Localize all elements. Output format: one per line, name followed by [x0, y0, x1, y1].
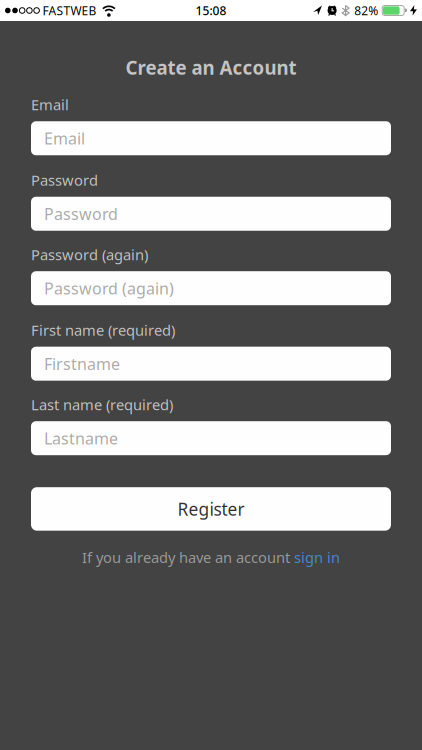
staticText: 15:08 — [195, 2, 226, 18]
staticText: 82% — [354, 2, 378, 18]
staticText: Create an Account — [125, 55, 296, 80]
staticText: Lastname — [44, 428, 118, 449]
staticText: Register — [177, 497, 244, 520]
staticText: FASTWEB — [42, 2, 96, 18]
staticText: Password (again) — [44, 278, 174, 299]
staticText: If you already have an account — [82, 548, 294, 567]
staticText: Firstname — [44, 353, 120, 374]
staticText: First name (required) — [31, 320, 175, 340]
button[interactable]: Lastname — [31, 421, 391, 455]
button[interactable]: Password — [31, 197, 391, 231]
button[interactable]: Firstname — [31, 347, 391, 381]
staticText: Email — [31, 95, 69, 114]
staticText: sign in — [294, 548, 340, 567]
button[interactable]: Register — [31, 487, 391, 531]
staticText: Password — [44, 203, 118, 224]
button[interactable]: sign in — [294, 548, 340, 567]
button[interactable]: Password (again) — [31, 271, 391, 305]
staticText: Password (again) — [31, 245, 148, 264]
staticText: Password — [31, 170, 98, 190]
staticText: Email — [44, 128, 85, 149]
staticText: Last name (required) — [31, 395, 173, 414]
button[interactable]: Email — [31, 121, 391, 155]
